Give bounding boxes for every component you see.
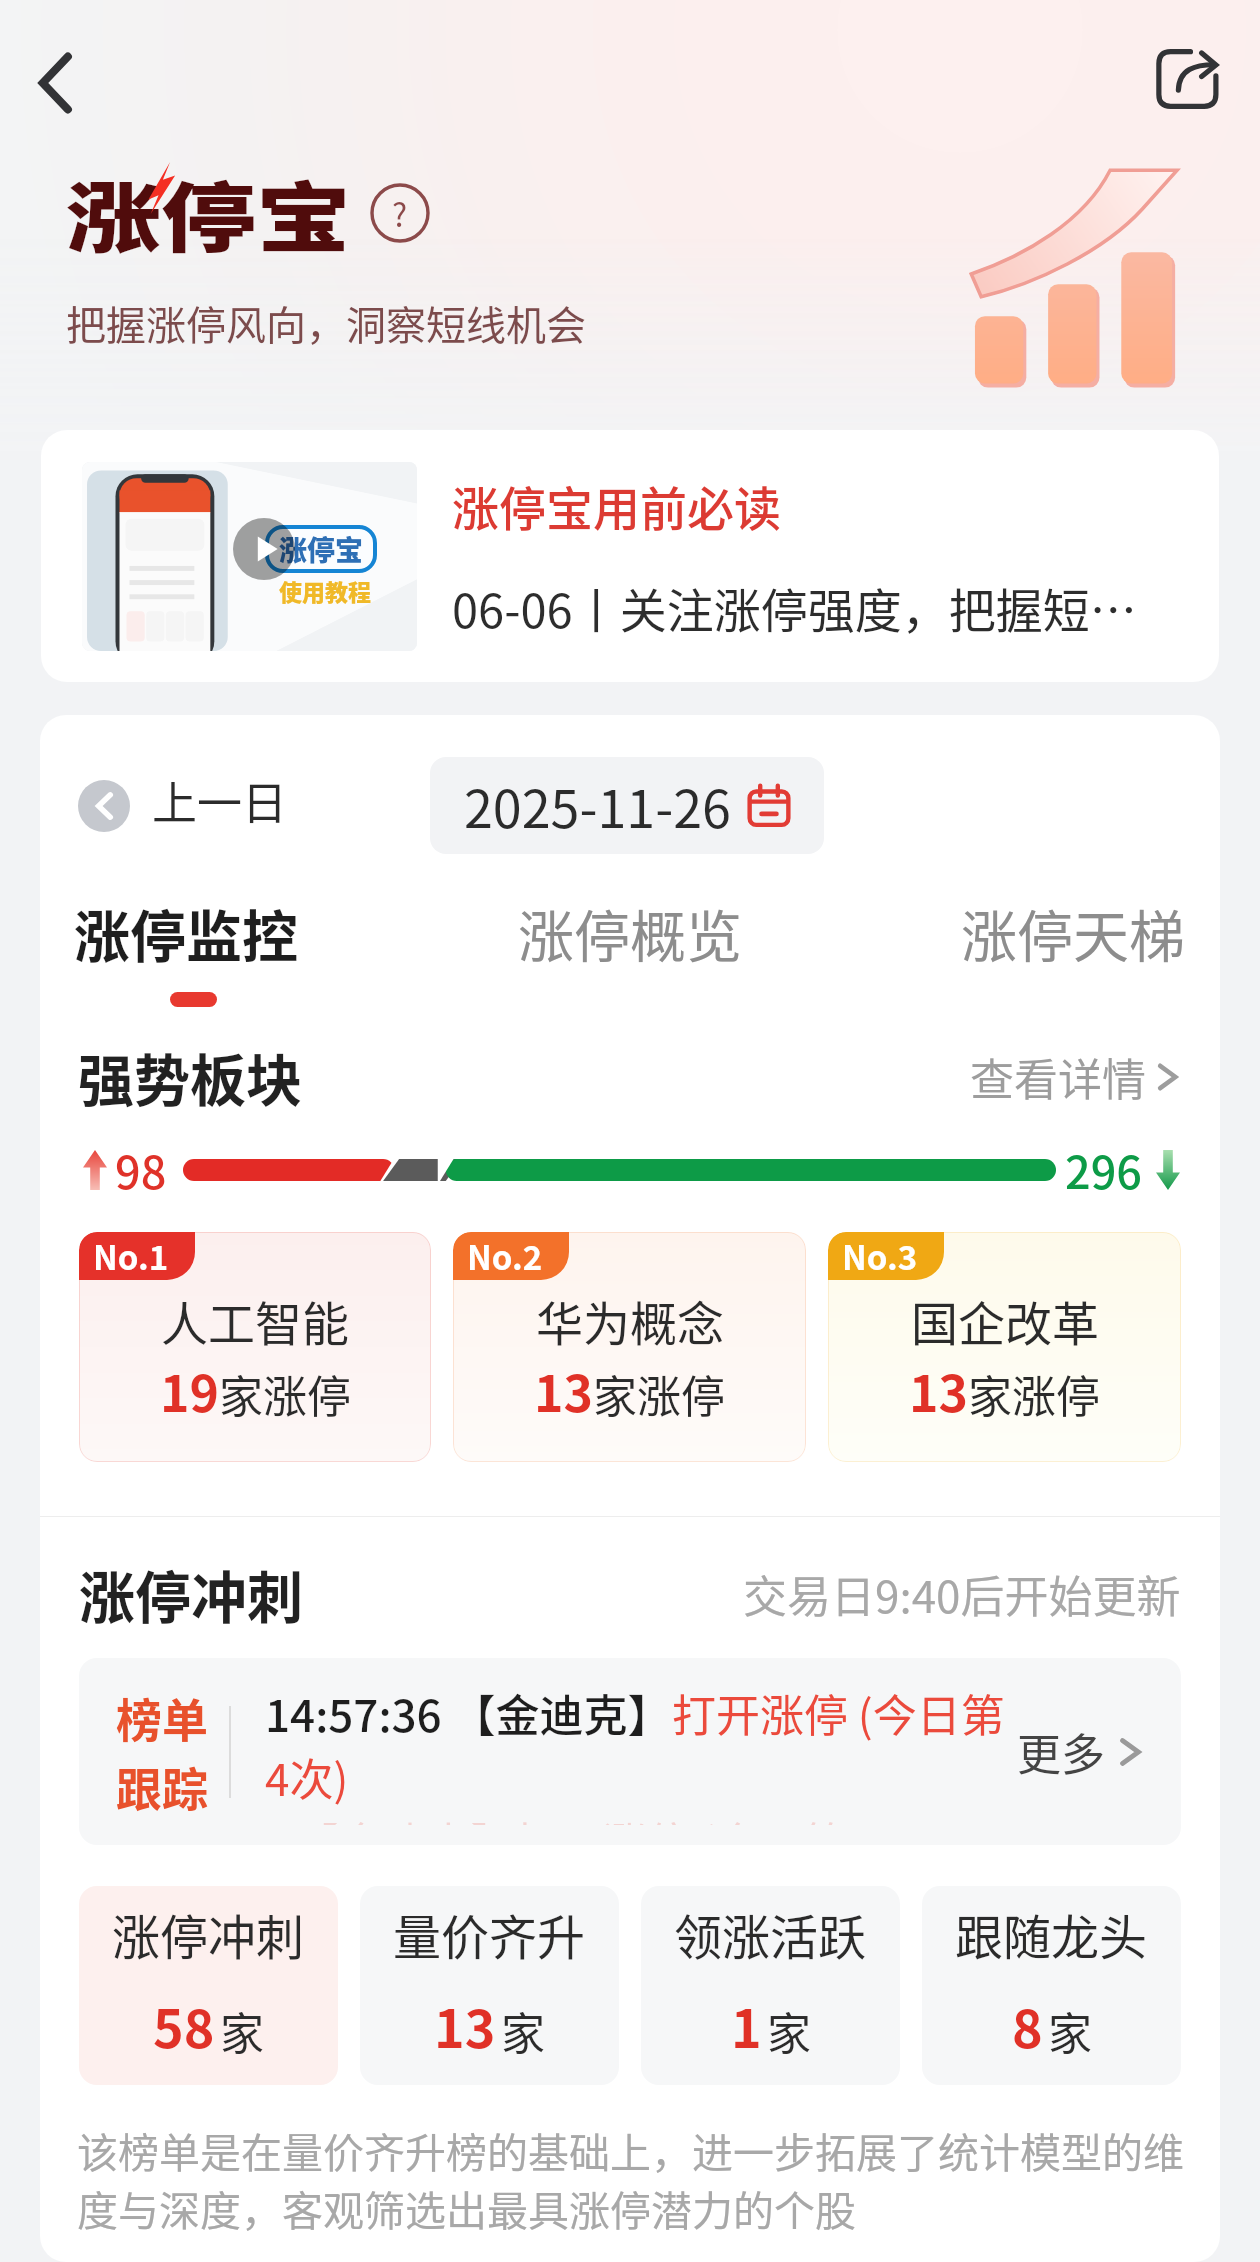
button[interactable]: 涨停宝 [41,430,1219,682]
button[interactable]: 涨停概览 [518,892,742,1007]
staticText: 19 [160,1354,219,1426]
staticText: 强势板块 [78,1036,302,1117]
staticText: 打开涨停 (今日第 [672,1681,1005,1745]
button[interactable]: 领涨活跃 [641,1886,900,2085]
staticText: 58 [153,1988,215,2063]
staticText: 上一日 [152,768,288,833]
staticText: 家涨停 [219,1362,351,1426]
staticText: 榜单 [116,1684,208,1751]
staticText: 06-06丨关注涨停强度，把握短… [452,573,1137,641]
staticText: 涨停监控 [74,892,298,973]
staticText: 把握涨停风向，洞察短线机会 [66,294,586,352]
button[interactable]: 涨停监控 [74,892,298,1007]
staticText: 8 [1012,1988,1043,2063]
staticText: 涨停宝 [279,529,364,570]
staticText: 家 [1048,1999,1092,2063]
staticText: 涨停天梯 [961,892,1185,973]
staticText: 2025-11-26 [464,768,731,843]
staticText: 使用教程 [279,574,371,607]
staticText: 【金迪克】打开涨停 (今日第 [265,1809,848,1825]
staticText: 13 [909,1354,968,1426]
staticText: 更多 [1017,1720,1105,1784]
button[interactable]: 涨停冲刺 [79,1886,338,2085]
staticText: 98 [115,1137,167,1202]
staticText: No.1 [93,1232,169,1280]
button[interactable]: Help [370,183,430,243]
staticText: ? [392,190,408,236]
staticText: 家 [501,1999,545,2063]
button[interactable]: 量价齐升 [360,1886,619,2085]
staticText: 13 [534,1354,593,1426]
staticText: 跟踪 [116,1753,208,1820]
staticText: 量价齐升 [393,1899,586,1969]
button[interactable]: 上一日 [78,773,288,838]
staticText: 交易日9:40后开始更新 [743,1562,1181,1626]
button[interactable]: No.1 [79,1232,431,1462]
staticText: 人工智能 [161,1286,349,1354]
button[interactable]: Back [20,48,90,118]
button[interactable]: 榜单 [79,1658,1181,1845]
button[interactable]: 涨停天梯 [961,892,1185,1007]
staticText: 13 [434,1988,496,2063]
staticText: 家 [220,1999,264,2063]
staticText: 14:57:36 【金迪克】 [265,1681,672,1745]
staticText: 涨停宝用前必读 [452,471,781,539]
staticText: 296 [1065,1137,1142,1202]
staticText: 该榜单是在量价齐升榜的基础上，进一步拓展了统计模型的维度与深度，客观筛选出最具涨… [77,2120,1186,2238]
staticText: 1 [731,1988,762,2063]
staticText: 跟随龙头 [955,1899,1148,1969]
button[interactable]: No.2 [453,1232,806,1462]
staticText: 家涨停 [593,1362,725,1426]
staticText: No.2 [467,1232,543,1280]
staticText: 家 [767,1999,811,2063]
staticText: 查看详情 [970,1045,1146,1109]
staticText: 4次) [265,1745,349,1809]
staticText: 涨停冲刺 [79,1553,303,1634]
button[interactable]: 跟随龙头 [922,1886,1181,2085]
staticText: 涨停冲刺 [112,1899,305,1969]
staticText: 家涨停 [968,1362,1100,1426]
staticText: 国企改革 [911,1286,1099,1354]
staticText: 涨停宝 [66,158,351,268]
staticText: 华为概念 [536,1286,724,1354]
button[interactable]: Share [1143,34,1233,124]
staticText: No.3 [842,1232,918,1280]
staticText: 领涨活跃 [674,1899,867,1969]
staticText: 涨停概览 [518,892,742,973]
button[interactable]: 2025-11-26 [430,757,824,854]
button[interactable]: 查看详情 [970,1045,1186,1109]
button[interactable]: No.3 [828,1232,1181,1462]
